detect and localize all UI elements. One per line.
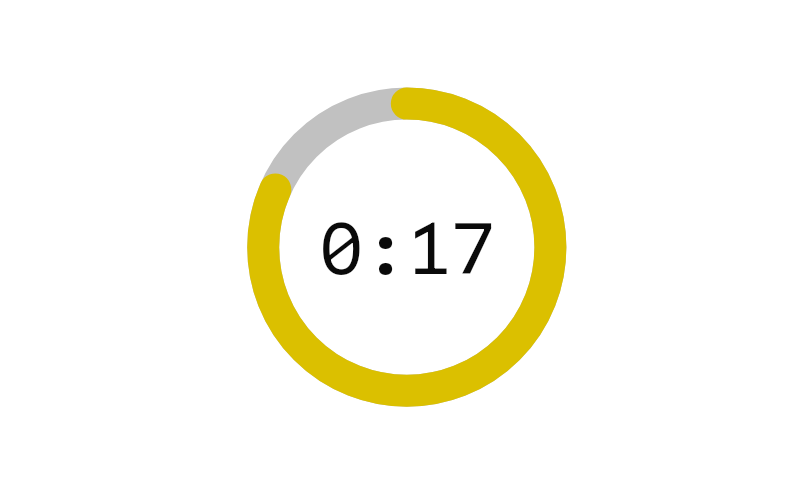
staticText: 0:17: [318, 191, 496, 296]
